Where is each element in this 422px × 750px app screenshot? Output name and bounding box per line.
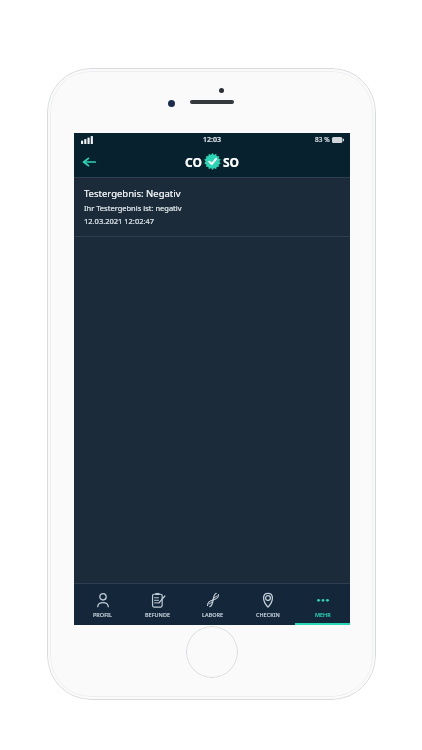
staticText: 12:03	[203, 135, 221, 145]
button[interactable]: PROFIL	[74, 584, 130, 625]
staticText: SO	[223, 154, 240, 170]
staticText: CO	[185, 154, 202, 170]
button[interactable]: Testergebnis: Negativ	[74, 178, 350, 236]
staticText: CHECKIN	[256, 611, 280, 618]
staticText: MEHR	[315, 611, 331, 618]
button[interactable]: LABORE	[185, 584, 240, 625]
button[interactable]: MEHR	[295, 584, 350, 625]
button[interactable]: BEFUNDE	[130, 584, 185, 625]
button[interactable]: CHECKIN	[240, 584, 295, 625]
button[interactable]: Back	[74, 147, 104, 177]
staticText: Testergebnis: Negativ	[84, 187, 181, 200]
staticText: LABORE	[202, 611, 223, 618]
staticText: Ihr Testergebnis ist: negativ	[84, 203, 182, 213]
staticText: PROFIL	[93, 611, 112, 618]
staticText: 12.03.2021 12:02:47	[84, 216, 155, 226]
staticText: BEFUNDE	[145, 611, 170, 618]
staticText: 83 %	[315, 135, 330, 144]
